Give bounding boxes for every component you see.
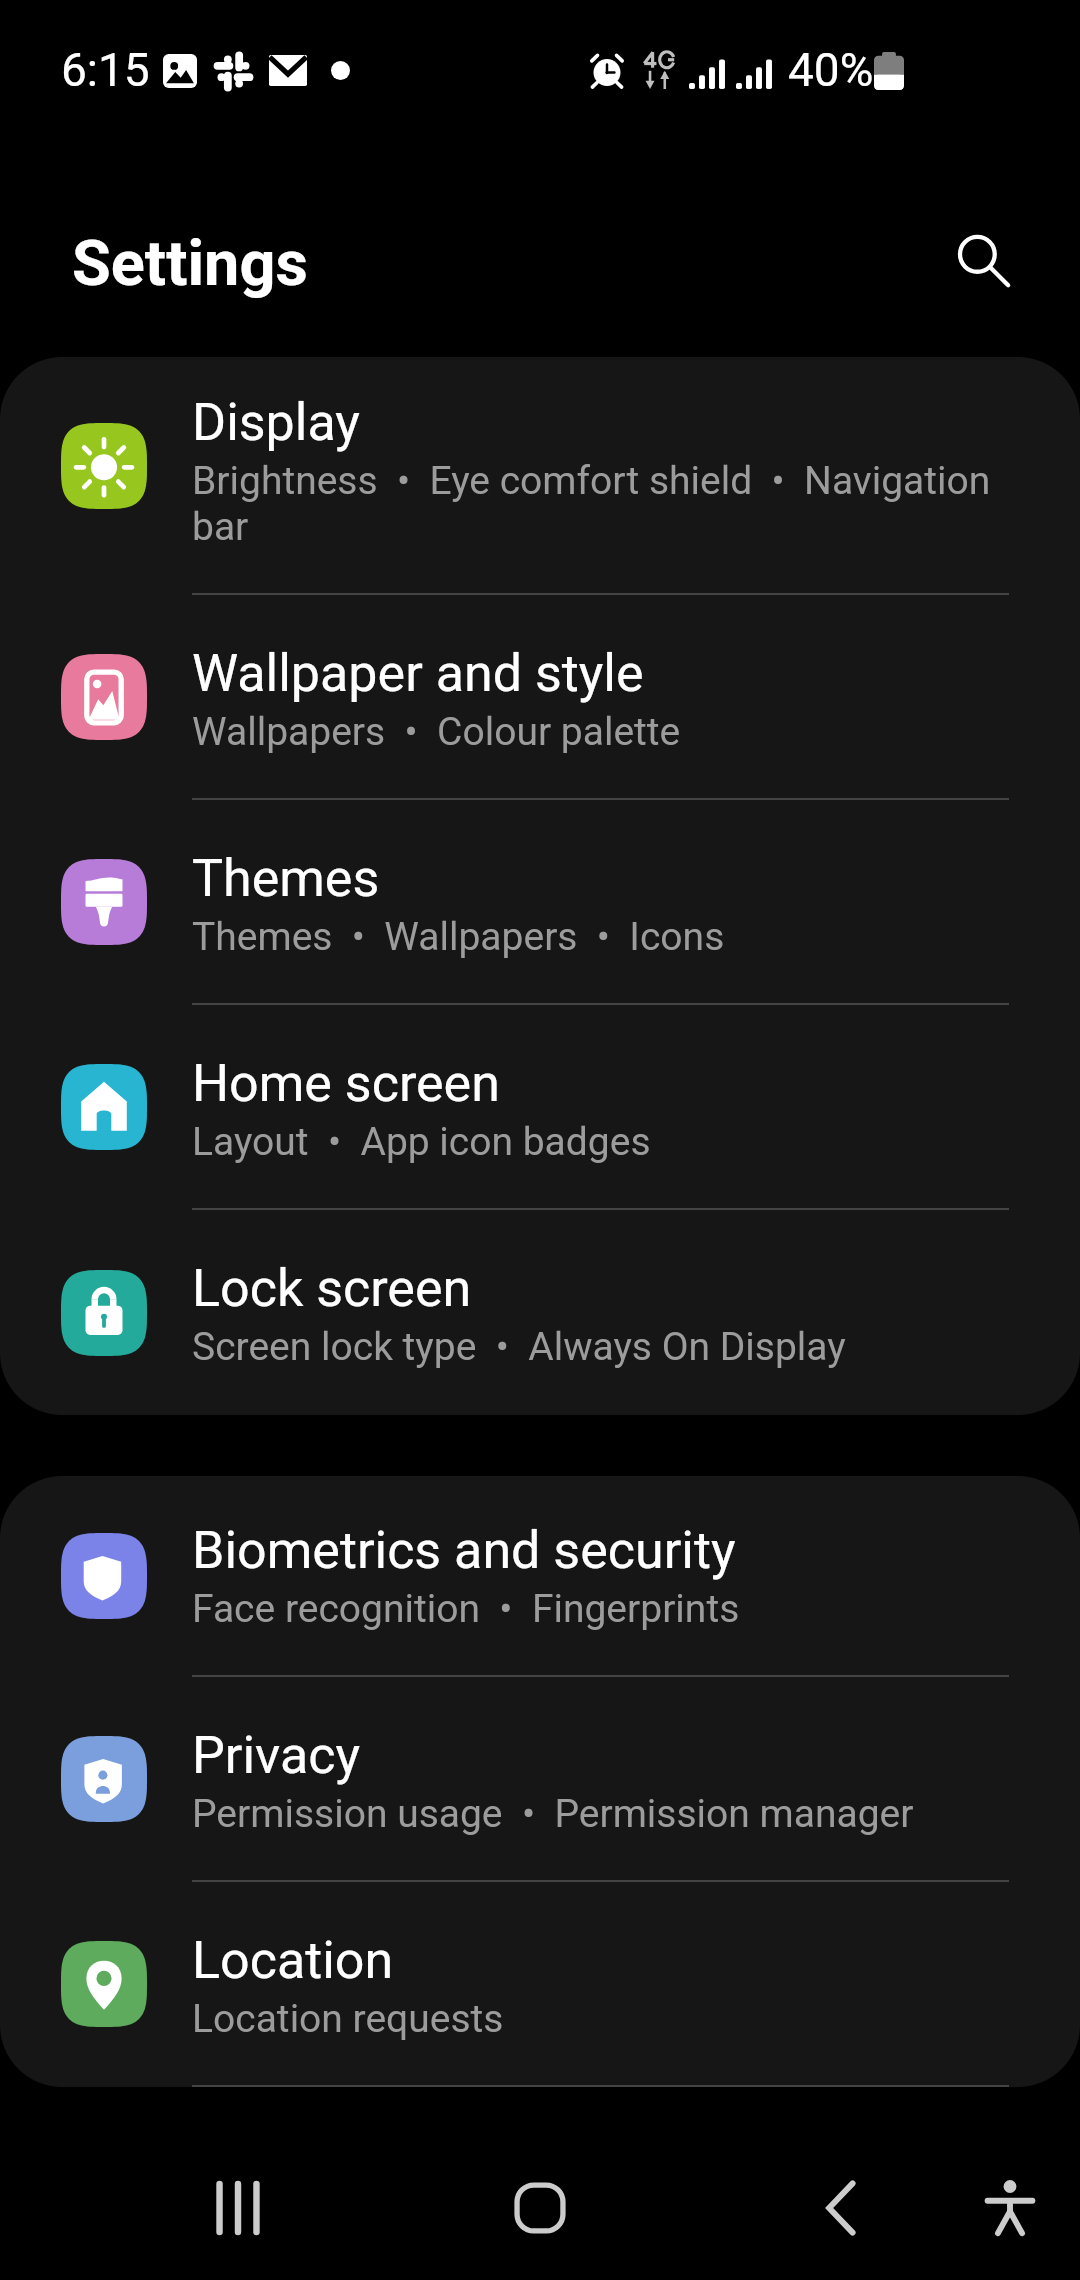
staticText: Wallpaper and style — [192, 647, 644, 703]
button[interactable]: Lock screen — [0, 1210, 1080, 1415]
staticText: Face recognition • Fingerprints — [192, 1586, 740, 1632]
staticText: Lock screen — [192, 1262, 472, 1318]
staticText: Wallpapers • Colour palette — [192, 709, 681, 755]
button[interactable]: Themes — [0, 800, 1080, 1005]
button[interactable]: Accessibility — [965, 2135, 1055, 2280]
staticText: Location — [192, 1934, 394, 1990]
button[interactable]: Back — [797, 2135, 887, 2280]
staticText: Display — [192, 396, 360, 452]
staticText: Permission usage • Permission manager — [192, 1791, 914, 1837]
staticText: Screen lock type • Always On Display — [192, 1324, 846, 1370]
button[interactable]: Location — [0, 1882, 1080, 2087]
staticText: Privacy — [192, 1729, 360, 1785]
staticText: Brightness • Eye comfort shield • Naviga… — [192, 458, 1009, 550]
staticText: Settings — [72, 227, 308, 301]
staticText: 40% — [788, 43, 874, 97]
button[interactable]: Biometrics and security — [0, 1476, 1080, 1677]
staticText: Location requests — [192, 1996, 504, 2042]
staticText: Home screen — [192, 1057, 500, 1113]
staticText: 6:15 — [61, 43, 150, 97]
button[interactable]: Display — [0, 357, 1080, 595]
staticText: Themes — [192, 852, 380, 908]
button[interactable]: Home screen — [0, 1005, 1080, 1210]
staticText: Biometrics and security — [192, 1524, 736, 1580]
button[interactable]: Search — [934, 211, 1030, 307]
staticText: Layout • App icon badges — [192, 1119, 651, 1165]
button[interactable]: Recents — [193, 2135, 283, 2280]
button[interactable]: Privacy — [0, 1677, 1080, 1882]
staticText: Themes • Wallpapers • Icons — [192, 914, 725, 960]
button[interactable]: Home — [495, 2135, 585, 2280]
button[interactable]: Wallpaper and style — [0, 595, 1080, 800]
